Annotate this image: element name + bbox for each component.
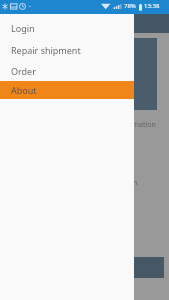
- staticText: Order: [11, 65, 36, 77]
- staticText: Enter the reference number shown on your…: [12, 178, 162, 199]
- button[interactable]: About: [0, 81, 134, 99]
- staticText: 78%: [124, 2, 136, 10]
- button[interactable]: CONTINUE: [13, 257, 164, 278]
- button[interactable]: Open navigation drawer: [5, 18, 18, 31]
- staticText: Login: [11, 22, 35, 34]
- button[interactable]: Repair shipment: [0, 40, 134, 60]
- button[interactable]: Order: [0, 61, 134, 81]
- staticText: 13:38: [144, 2, 160, 10]
- staticText: Repair shipment: [11, 44, 81, 56]
- button[interactable]: [12, 38, 157, 110]
- button[interactable]: Login: [0, 18, 134, 38]
- staticText: About: [11, 84, 37, 96]
- staticText: Track your shipment and repair informati…: [12, 120, 157, 130]
